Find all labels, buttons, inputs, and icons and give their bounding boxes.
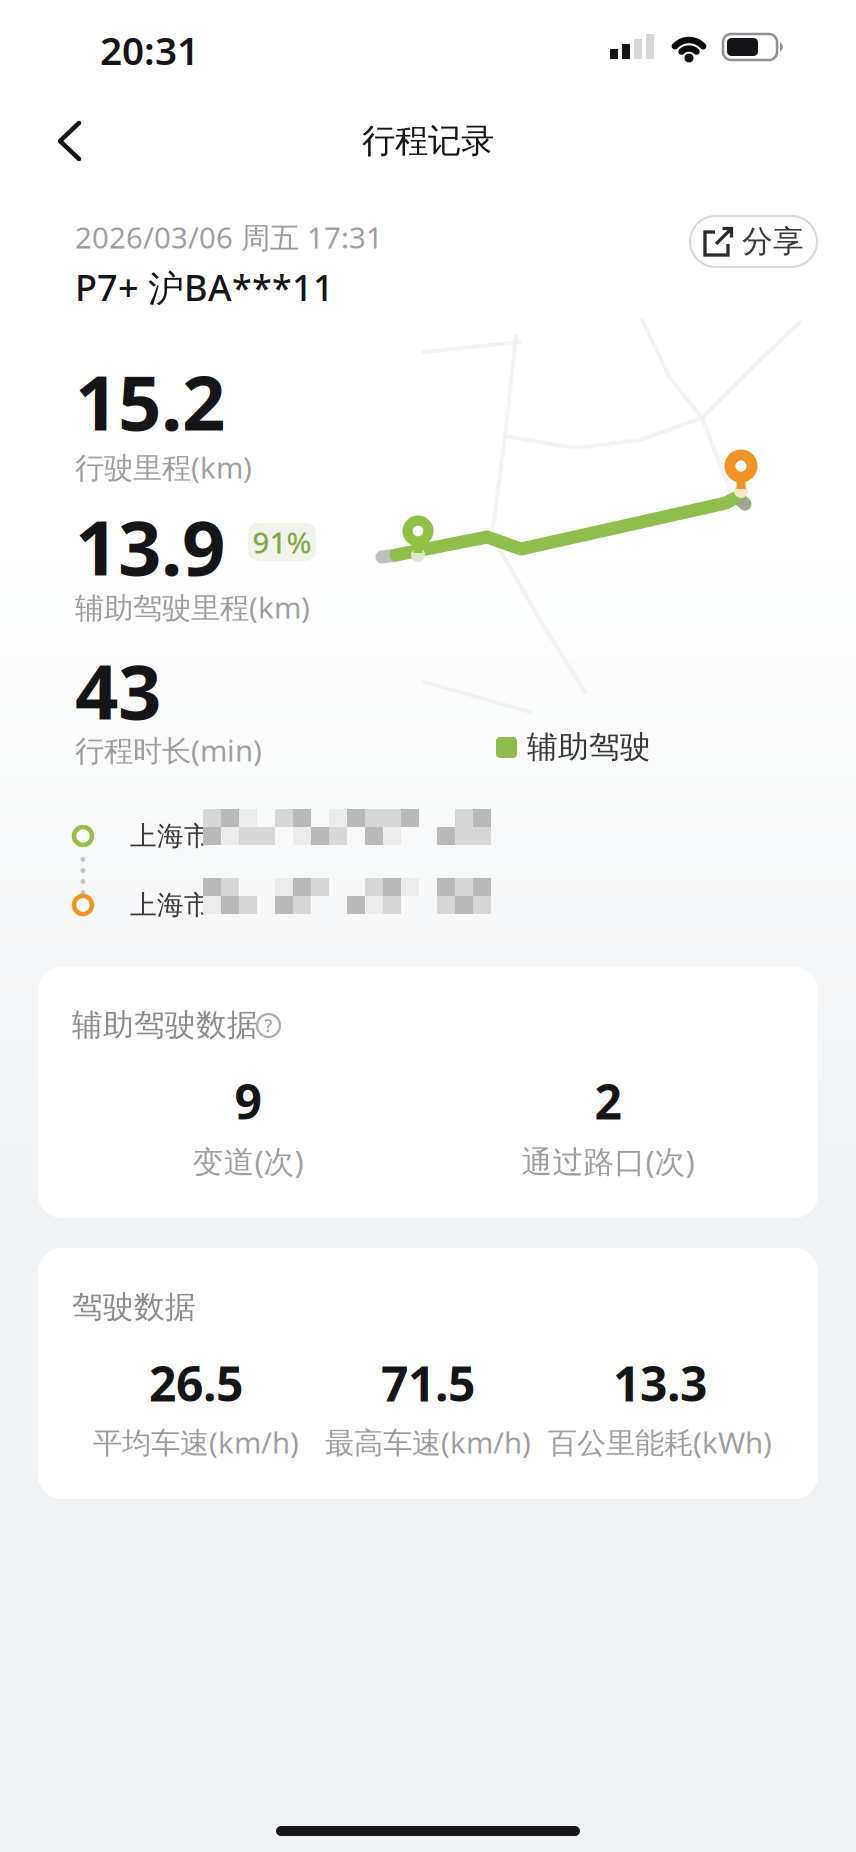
button[interactable]: 分享 (690, 216, 817, 267)
button[interactable]: Help (257, 1014, 280, 1037)
staticText: 辅助驾驶数据 (72, 1006, 258, 1044)
staticText: 2026/03/06 周五 17:31 (75, 217, 383, 256)
staticText: 变道(次) (192, 1141, 303, 1181)
staticText: 平均车速(km/h) (93, 1422, 299, 1461)
staticText: 百公里能耗(kWh) (548, 1422, 772, 1461)
staticText: 行驶里程(km) (75, 447, 252, 486)
staticText: 9 (234, 1069, 261, 1133)
staticText: 行程记录 (362, 120, 494, 161)
staticText: 13.9 (75, 495, 225, 596)
staticText: 71.5 (381, 1351, 475, 1415)
button[interactable]: Back (43, 108, 96, 174)
staticText: 辅助驾驶里程(km) (75, 587, 310, 626)
staticText: 分享 (742, 223, 804, 260)
staticText: 上海市 (130, 820, 211, 852)
staticText: ? (264, 1014, 272, 1037)
staticText: 通过路口(次) (521, 1141, 694, 1181)
staticText: 行程时长(min) (75, 730, 262, 769)
staticText: 辅助驾驶 (527, 728, 651, 766)
staticText: P7+ 沪BA***11 (75, 263, 334, 311)
staticText: 43 (75, 639, 161, 740)
staticText: 91% (252, 522, 311, 561)
staticText: 最高车速(km/h) (325, 1422, 531, 1461)
staticText: 上海市 (130, 889, 211, 921)
staticText: 13.3 (613, 1351, 707, 1415)
staticText: 26.5 (149, 1351, 243, 1415)
staticText: 驾驶数据 (72, 1288, 196, 1326)
staticText: 15.2 (75, 350, 225, 451)
staticText: 2 (594, 1069, 621, 1133)
staticText: 20:31 (100, 24, 199, 76)
